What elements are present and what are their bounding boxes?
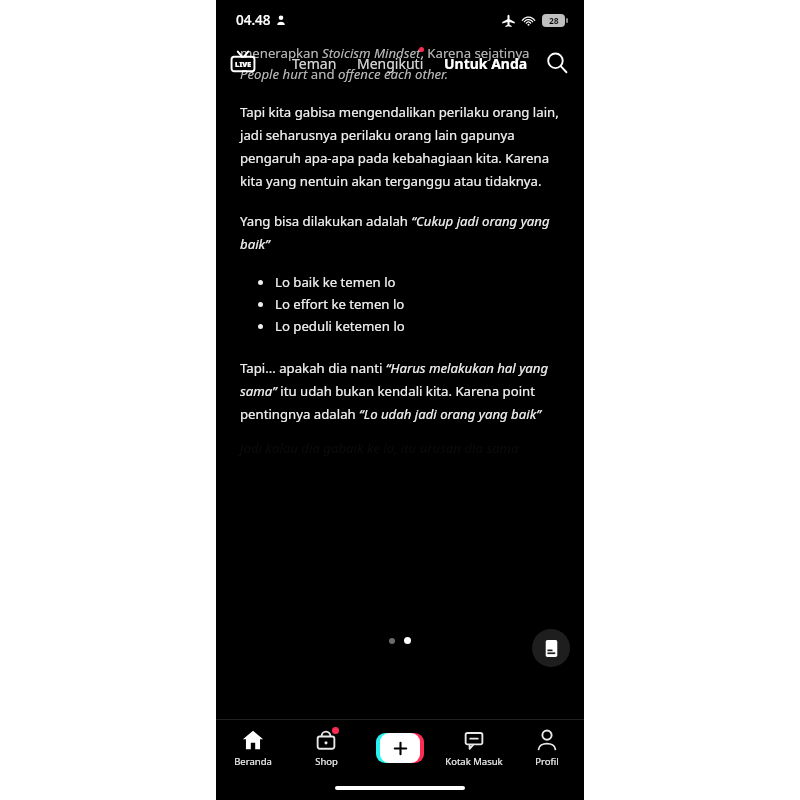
staticText: Yang bisa dilakukan adalah “Cukup jadi o… [240,212,560,253]
staticText: Shop [315,755,338,768]
staticText: Kotak Masuk [445,755,503,768]
button[interactable]: Profil [514,724,580,772]
button[interactable]: Mengikuti [355,48,426,79]
staticText: Tapi... apakah dia nanti “Harus melakuka… [240,359,560,423]
staticText: Tapi kita gabisa mengendalikan perilaku … [240,103,560,190]
button[interactable]: Beranda [220,724,286,772]
staticText: Lo peduli ketemen lo [275,317,405,335]
staticText: Beranda [234,755,272,768]
staticText: Untuk Anda [444,54,528,73]
staticText: 28 [549,15,559,27]
button[interactable]: Kotak Masuk [441,724,507,772]
staticText: Lo effort ke temen lo [275,295,405,313]
button[interactable]: Create [367,733,433,763]
button[interactable]: Untuk Anda [442,48,530,79]
button[interactable]: Teman [290,48,339,79]
staticText: Teman [292,54,337,73]
button[interactable]: Shop [293,724,359,772]
button[interactable]: Search [540,46,574,80]
staticText: 04.48 [236,11,271,29]
staticText: LIVE [235,59,252,69]
staticText: Lo baik ke temen lo [275,273,396,291]
staticText: Profil [535,755,559,768]
button[interactable]: Read full post [532,629,570,667]
staticText: Mengikuti [357,54,424,73]
button[interactable]: LIVE [228,48,258,78]
staticText: menerapkan Stoicism Mindset. Karena seja… [240,44,560,83]
